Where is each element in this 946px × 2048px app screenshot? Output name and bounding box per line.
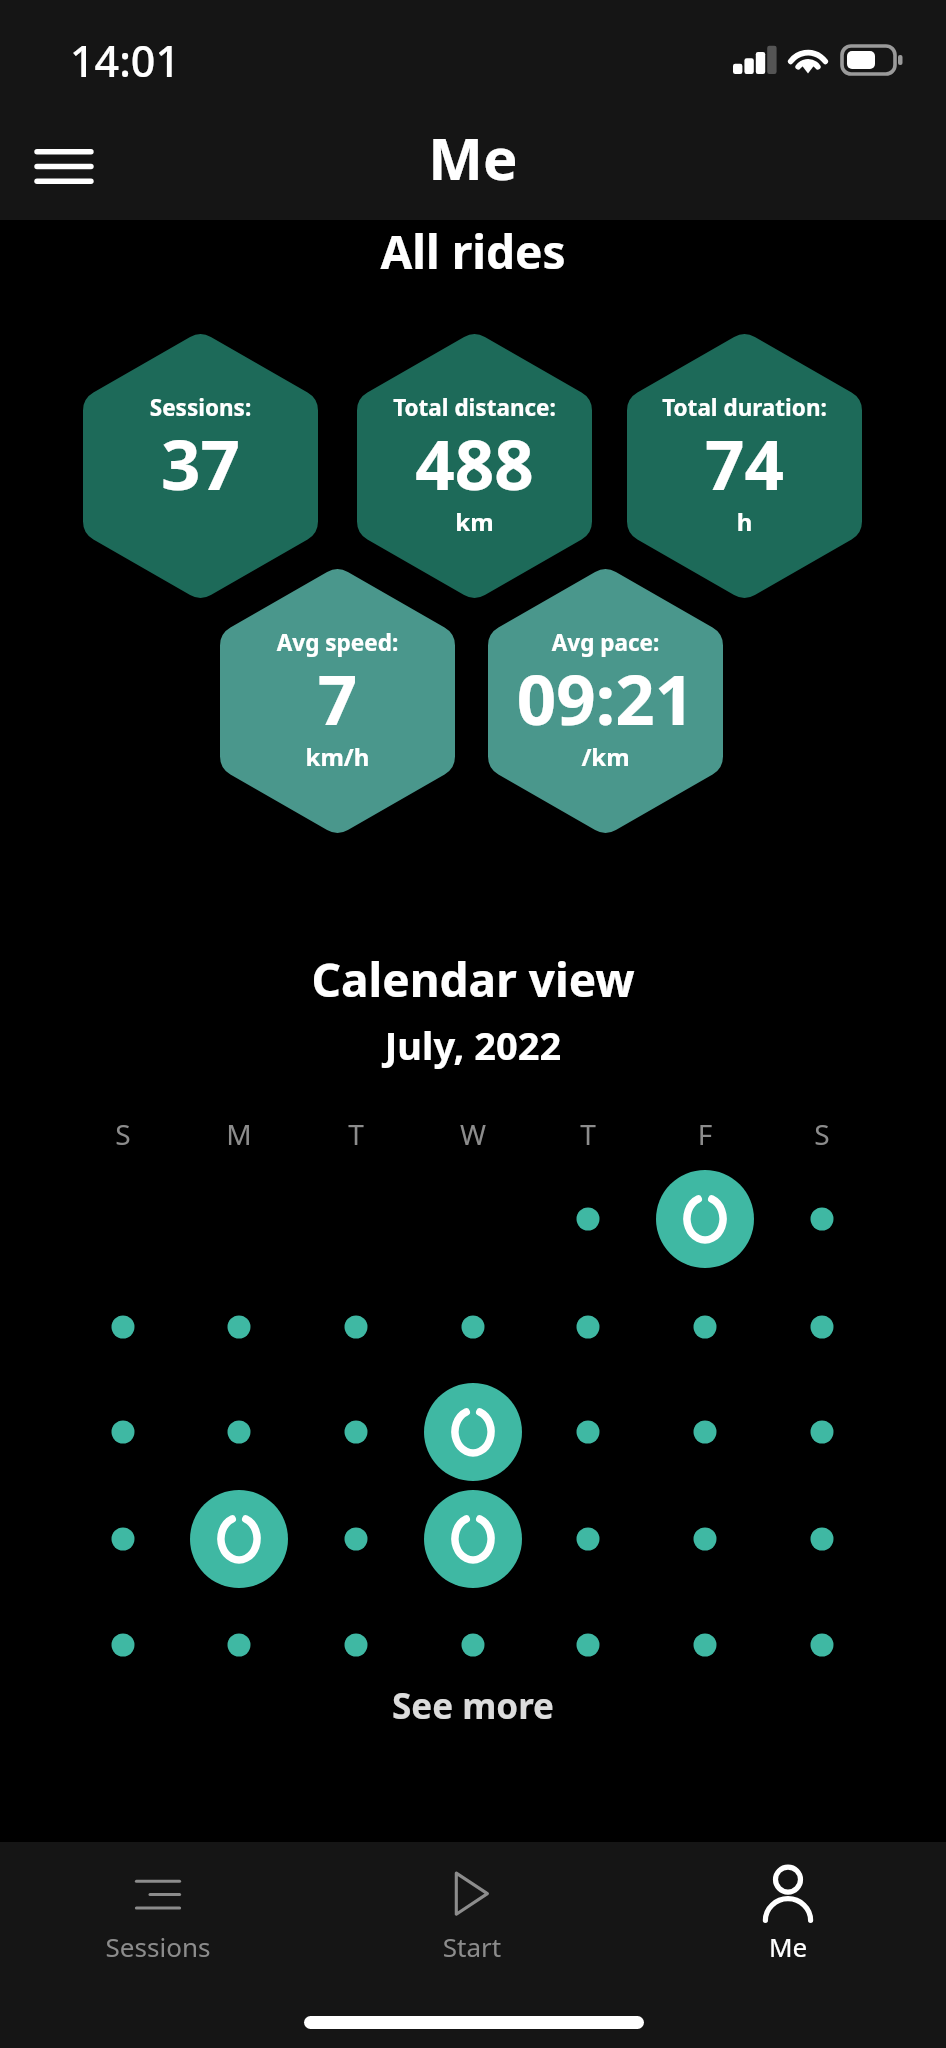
staticText: km/h xyxy=(180,740,495,773)
staticText: S xyxy=(782,1115,862,1153)
button[interactable] xyxy=(1,1848,315,1974)
staticText: Me xyxy=(638,1929,938,1964)
staticText: 74 xyxy=(587,416,902,510)
button[interactable]: Open navigation menu xyxy=(16,126,111,206)
staticText: /km xyxy=(448,740,763,773)
button[interactable] xyxy=(488,566,723,836)
staticText: Avg pace: xyxy=(448,627,763,658)
staticText: Sessions xyxy=(8,1929,308,1964)
button[interactable] xyxy=(631,1848,945,1974)
staticText: Me xyxy=(0,118,946,197)
staticText: See more xyxy=(0,1682,946,1730)
staticText: h xyxy=(587,505,902,538)
staticText: F xyxy=(665,1115,745,1153)
staticText: All rides xyxy=(0,220,946,283)
staticText: W xyxy=(433,1115,513,1153)
staticText: Calendar view xyxy=(0,948,946,1011)
staticText: T xyxy=(548,1115,628,1153)
staticText: 488 xyxy=(317,416,632,510)
staticText: S xyxy=(83,1115,163,1153)
button[interactable] xyxy=(83,331,318,601)
button[interactable] xyxy=(357,331,592,601)
staticText: T xyxy=(316,1115,396,1153)
staticText: Total distance: xyxy=(317,392,632,423)
staticText: July, 2022 xyxy=(0,1019,946,1071)
staticText: 7 xyxy=(180,651,495,745)
button[interactable] xyxy=(220,566,455,836)
button[interactable] xyxy=(350,1684,596,1734)
button[interactable] xyxy=(627,331,862,601)
staticText: 37 xyxy=(43,416,358,510)
staticText: Avg speed: xyxy=(180,627,495,658)
staticText: Total duration: xyxy=(587,392,902,423)
staticText: M xyxy=(199,1115,279,1153)
staticText: Sessions: xyxy=(43,392,358,423)
staticText: 14:01 xyxy=(0,31,275,90)
staticText: 09:21 xyxy=(448,651,763,745)
staticText: Start xyxy=(322,1929,622,1964)
staticText: km xyxy=(317,505,632,538)
button[interactable] xyxy=(315,1848,629,1974)
